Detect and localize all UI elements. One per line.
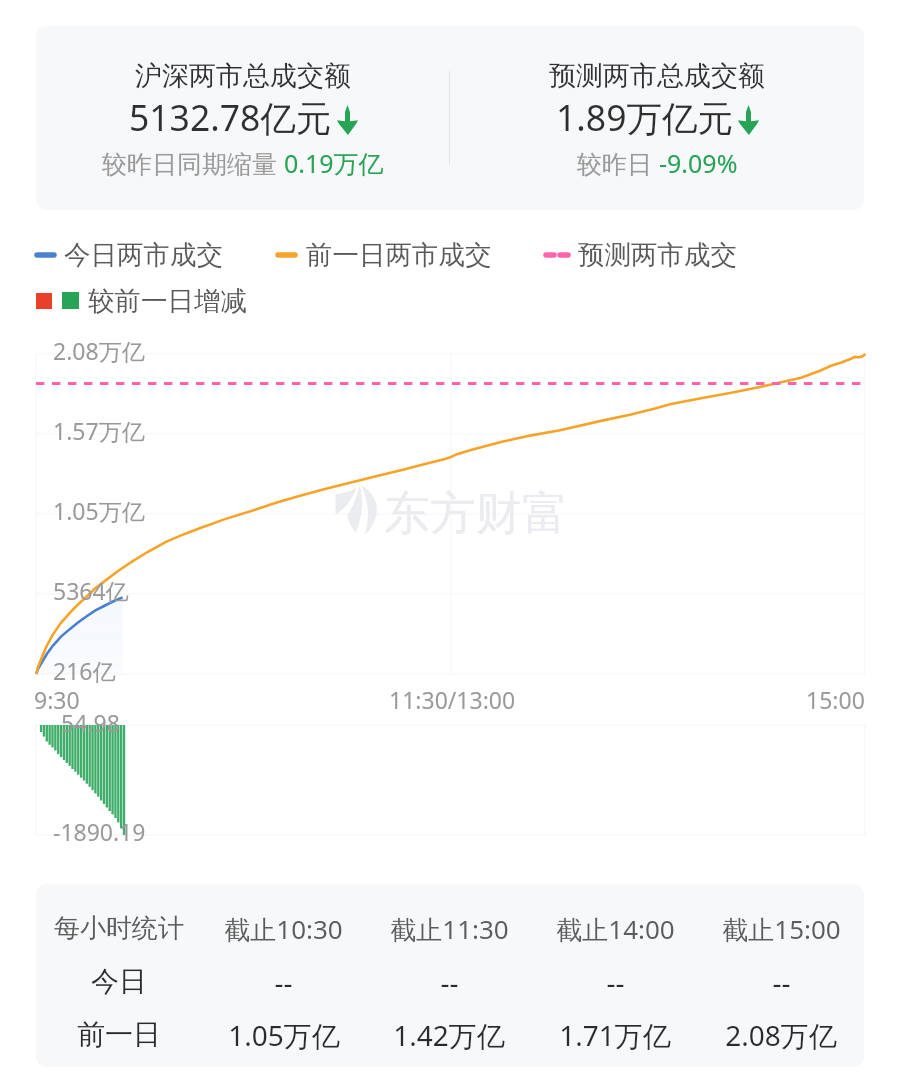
button[interactable]: -- [532, 955, 698, 1008]
staticText: 截止14:00 [556, 911, 675, 947]
staticText: 今日 [91, 964, 147, 999]
staticText: 2.08万亿 [53, 335, 145, 366]
button[interactable]: 2.08万亿 [698, 1008, 864, 1061]
staticText: 1.71万亿 [559, 1016, 671, 1054]
staticText: 较昨日同期缩量 [102, 146, 284, 180]
button[interactable]: 沪深两市总成交额 [36, 26, 864, 210]
button[interactable]: 每小时统计 [36, 902, 201, 955]
staticText: -- [772, 963, 791, 1001]
staticText: 1.05万亿 [228, 1016, 340, 1054]
button[interactable]: 截止15:00 [698, 902, 864, 955]
staticText: 每小时统计 [54, 912, 184, 945]
staticText: 截止11:30 [390, 911, 509, 947]
staticText: -- [606, 963, 625, 1001]
staticText: 前一日 [77, 1017, 161, 1052]
staticText: -1890.19 [53, 816, 146, 847]
staticText: 截止15:00 [722, 911, 841, 947]
button[interactable]: 1.71万亿 [532, 1008, 698, 1061]
staticText: 2.08万亿 [725, 1016, 837, 1054]
staticText: 预测两市成交 [578, 238, 737, 271]
staticText: 沪深两市总成交额 [135, 59, 351, 93]
staticText: -- [440, 963, 459, 1001]
staticText: -9.09% [659, 146, 738, 180]
staticText: 15:00 [806, 684, 865, 715]
staticText: 1.42万亿 [393, 1016, 505, 1054]
staticText: 东方财富 [384, 485, 568, 543]
staticText: 5132.78亿元 [129, 93, 332, 141]
button[interactable]: 今日 [36, 955, 201, 1008]
staticText: 216亿 [53, 655, 116, 686]
button[interactable]: 1.05万亿 [201, 1008, 366, 1061]
staticText: 1.05万亿 [53, 495, 145, 526]
staticText: 54.98 [61, 707, 120, 738]
button[interactable]: 截止14:00 [532, 902, 698, 955]
button[interactable]: 每小时统计 [36, 884, 864, 1067]
staticText: 较前一日增减 [88, 284, 247, 317]
staticText: 5364亿 [53, 575, 129, 606]
staticText: 1.57万亿 [53, 415, 145, 446]
staticText: 截止10:30 [224, 911, 343, 947]
button[interactable]: 1.42万亿 [366, 1008, 532, 1061]
staticText: 前一日两市成交 [306, 238, 492, 271]
button[interactable]: -- [366, 955, 532, 1008]
staticText: 0.19万亿 [284, 146, 384, 180]
button[interactable]: 前一日 [36, 1008, 201, 1061]
staticText: 预测两市总成交额 [549, 59, 765, 93]
staticText: 9:30 [34, 684, 80, 715]
button[interactable]: -- [698, 955, 864, 1008]
button[interactable]: -- [201, 955, 366, 1008]
button[interactable]: 截止10:30 [201, 902, 366, 955]
staticText: 11:30/13:00 [389, 684, 516, 715]
staticText: 今日两市成交 [64, 238, 223, 271]
staticText: 1.89万亿元 [556, 93, 733, 141]
button[interactable]: 截止11:30 [366, 902, 532, 955]
staticText: -- [274, 963, 293, 1001]
staticText: 较昨日 [577, 146, 659, 180]
